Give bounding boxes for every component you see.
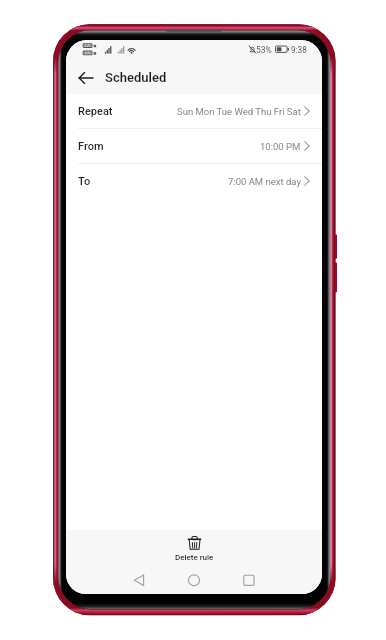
button[interactable]: Recent apps — [237, 568, 322, 594]
staticText: Scheduled — [105, 70, 167, 85]
button[interactable]: Back — [66, 568, 152, 594]
staticText: 53% — [256, 45, 272, 55]
button[interactable]: To — [66, 164, 322, 198]
staticText: 7:00 AM next day — [228, 176, 301, 187]
button[interactable]: Delete rule — [66, 530, 322, 568]
staticText: Delete rule — [175, 553, 214, 562]
staticText: From — [78, 140, 104, 153]
staticText: Repeat — [78, 105, 113, 118]
button[interactable]: Back — [74, 66, 98, 90]
staticText: Sun Mon Tue Wed Thu Fri Sat — [177, 106, 301, 117]
button[interactable]: Repeat — [66, 94, 322, 128]
staticText: 10:00 PM — [260, 141, 301, 152]
staticText: To — [78, 175, 91, 188]
button[interactable]: From — [66, 129, 322, 163]
button[interactable]: Home — [152, 568, 237, 594]
staticText: 9:38 — [291, 45, 307, 55]
